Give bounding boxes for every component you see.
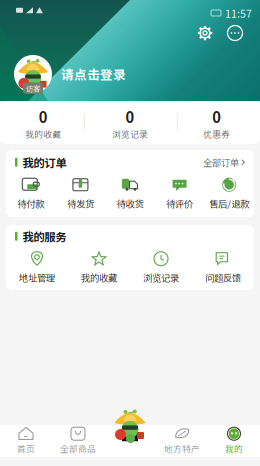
button[interactable]: 0	[0, 96, 87, 149]
staticText: 我的服务	[22, 228, 66, 244]
button[interactable]: 售后/退款	[204, 177, 254, 210]
button[interactable]: Messages	[224, 22, 246, 44]
staticText: 待付款	[17, 197, 44, 210]
staticText: 优惠券	[203, 127, 230, 140]
button[interactable]: 首页	[0, 422, 52, 460]
button[interactable]: 待发货	[56, 177, 105, 210]
button[interactable]: Settings	[194, 22, 216, 44]
button[interactable]: 浏览记录	[130, 251, 192, 284]
staticText: 浏览记录	[143, 271, 179, 284]
staticText: 全部订单	[203, 155, 239, 169]
staticText: 我的收藏	[81, 271, 117, 284]
staticText: 待评价	[166, 197, 193, 210]
staticText: 待发货	[67, 197, 94, 210]
staticText: 问题反馈	[205, 271, 241, 284]
staticText: 浏览记录	[112, 127, 148, 140]
staticText: 请点击登录	[61, 65, 126, 83]
button[interactable]: 访客	[0, 52, 260, 96]
staticText: 我的	[225, 442, 243, 455]
staticText: 地方特产	[164, 442, 200, 455]
staticText: 我的收藏	[25, 127, 61, 140]
staticText: 地址管理	[19, 271, 55, 284]
button[interactable]: 待收货	[105, 177, 155, 210]
staticText: 访客	[26, 83, 40, 93]
button[interactable]: 全部订单	[203, 155, 245, 169]
button[interactable]: 待评价	[155, 177, 204, 210]
button[interactable]: 我的收藏	[68, 251, 130, 284]
button[interactable]: 全部商品	[52, 422, 104, 460]
button[interactable]: 地方特产	[156, 422, 208, 460]
button[interactable]	[104, 422, 156, 460]
button[interactable]: 0	[87, 96, 173, 149]
staticText: 0	[39, 106, 48, 127]
button[interactable]: 我的	[208, 422, 260, 460]
button[interactable]: 0	[173, 96, 260, 149]
button[interactable]: 问题反馈	[192, 251, 254, 284]
staticText: 售后/退款	[209, 197, 249, 210]
staticText: 0	[125, 106, 134, 127]
staticText: 首页	[17, 442, 35, 455]
staticText: 全部商品	[60, 442, 96, 455]
button[interactable]: 地址管理	[6, 251, 68, 284]
staticText: 0	[212, 106, 221, 127]
button[interactable]: 待付款	[6, 177, 56, 210]
staticText: 待收货	[116, 197, 143, 210]
staticText: 11:57	[225, 5, 252, 21]
staticText: 我的订单	[22, 154, 66, 170]
